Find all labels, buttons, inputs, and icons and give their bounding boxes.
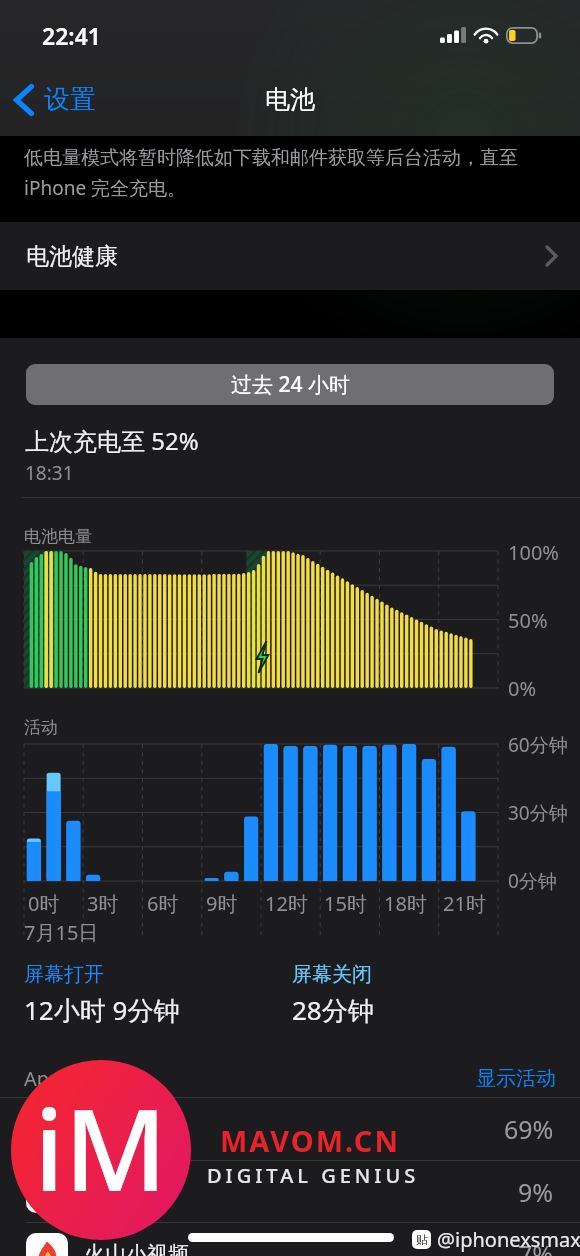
staticText: DIGITAL GENIUS xyxy=(207,1162,420,1189)
staticText: 30分钟 xyxy=(508,800,568,826)
staticText: 低电量模式将暂时降低如下载和邮件获取等后台活动，直至 iPhone 完全充电。 xyxy=(24,146,518,200)
staticText: 显示活动 xyxy=(476,1066,556,1091)
staticText: 照片 xyxy=(84,1179,126,1205)
staticText: 3时 xyxy=(87,890,119,917)
staticText: 18:31 xyxy=(25,460,74,486)
staticText: 电池 xyxy=(265,84,315,115)
button[interactable]: Safari xyxy=(0,1098,580,1160)
staticText: 12时 xyxy=(265,890,308,917)
staticText: 0分钟 xyxy=(508,868,557,894)
other: Wi-Fi xyxy=(475,27,497,43)
staticText: @iphonexsmax吧 xyxy=(437,1226,580,1253)
staticText: 上次充电至 52% xyxy=(25,424,199,457)
staticText: 69% xyxy=(504,1112,554,1146)
other: Cellular signal xyxy=(440,27,466,43)
button[interactable]: 电池健康 xyxy=(0,222,580,290)
staticText: 50% xyxy=(508,607,548,634)
button[interactable]: 过去 24 小时 xyxy=(26,364,554,405)
staticText: 100% xyxy=(508,539,559,566)
staticText: 0% xyxy=(508,675,537,702)
staticText: 火山小视频 xyxy=(84,1241,189,1256)
staticText: 60分钟 xyxy=(508,732,568,758)
button[interactable]: 设置 xyxy=(6,75,104,124)
staticText: 屏幕关闭 xyxy=(292,962,372,987)
staticText: 0时 xyxy=(28,890,60,917)
staticText: 9时 xyxy=(206,890,238,917)
button[interactable]: 照片 xyxy=(0,1161,580,1223)
staticText: 7% xyxy=(518,1237,554,1256)
staticText: 12小时 9分钟 xyxy=(24,992,180,1028)
staticText: 贴 xyxy=(416,1232,428,1247)
staticText: 6时 xyxy=(147,890,179,917)
staticText: 7月15日 xyxy=(24,919,99,946)
staticText: 活动 xyxy=(24,717,58,738)
staticText: 9% xyxy=(518,1175,554,1209)
staticText: MAVOM.CN xyxy=(220,1121,400,1160)
other: Battery 22 percent xyxy=(506,27,542,44)
staticText: App使用电量 xyxy=(24,1065,142,1092)
staticText: 设置 xyxy=(44,83,96,116)
staticText: 屏幕打开 xyxy=(24,962,104,987)
staticText: 21时 xyxy=(443,890,486,917)
staticText: Safari xyxy=(84,1115,141,1144)
button[interactable]: 显示活动 xyxy=(474,1062,558,1095)
staticText: iM xyxy=(34,1071,168,1224)
staticText: 电池健康 xyxy=(26,242,118,271)
staticText: 18时 xyxy=(384,890,427,917)
staticText: 电池电量 xyxy=(24,526,92,547)
button[interactable]: 火山小视频 xyxy=(0,1223,580,1256)
staticText: 28分钟 xyxy=(292,992,374,1028)
staticText: 15时 xyxy=(324,890,367,917)
staticText: 过去 24 小时 xyxy=(231,370,350,399)
staticText: 22:41 xyxy=(42,20,101,51)
